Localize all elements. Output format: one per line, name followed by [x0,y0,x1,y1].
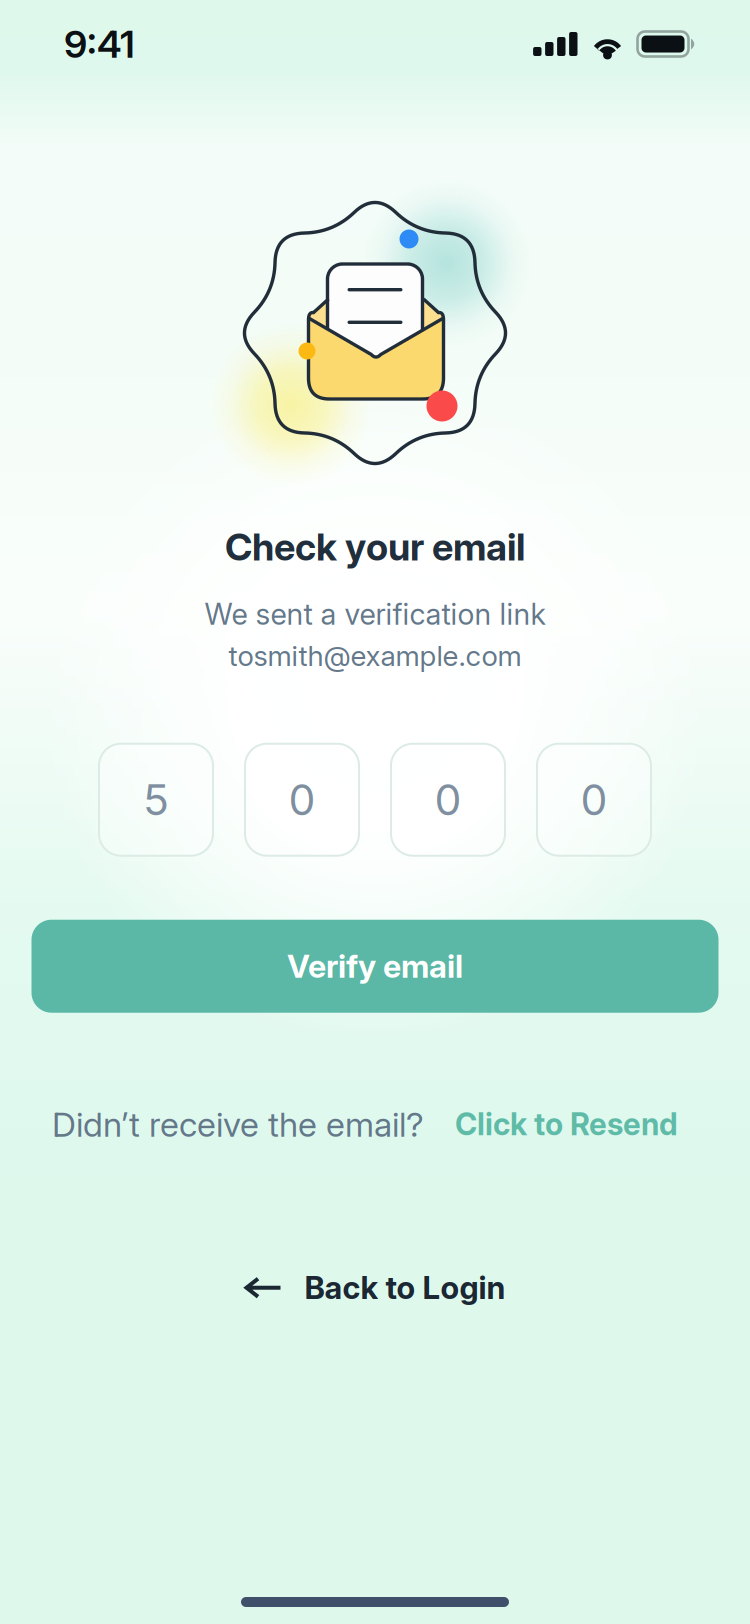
button[interactable]: Back to Login [244,1269,505,1307]
staticText: Verify email [287,947,463,985]
staticText: tosmith@example.com [228,639,521,673]
staticText: Back to Login [304,1269,505,1307]
staticText: 0 [288,774,315,825]
staticText: Click to Resend [455,1106,678,1143]
staticText: Check your email [225,524,525,569]
staticText: 0 [434,774,461,825]
staticText: 0 [580,774,607,825]
button[interactable]: Click to Resend [455,1106,678,1143]
staticText: Didn’t receive the email? [52,1104,424,1145]
staticText: We sent a verification link [204,596,545,632]
staticText: 9:41 [64,21,135,67]
staticText: 5 [143,774,169,825]
button[interactable]: Verify email [31,920,718,1013]
